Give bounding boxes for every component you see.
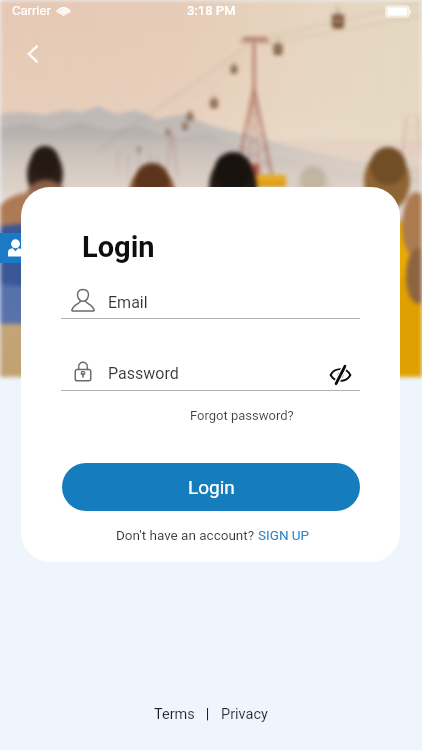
button[interactable]: Forgot password? bbox=[182, 403, 302, 428]
staticText: Login bbox=[188, 476, 235, 498]
button[interactable]: Show password bbox=[326, 364, 355, 386]
staticText: Login bbox=[82, 230, 155, 264]
button[interactable]: Login bbox=[62, 463, 360, 511]
staticText: Carrier bbox=[12, 3, 51, 18]
staticText: Password bbox=[108, 364, 179, 383]
staticText: | bbox=[195, 706, 221, 723]
button[interactable]: SIGN UP bbox=[258, 527, 310, 543]
staticText: Terms bbox=[154, 706, 195, 723]
button[interactable]: Privacy bbox=[221, 706, 268, 723]
staticText: Email bbox=[108, 293, 148, 312]
button[interactable]: Back bbox=[12, 33, 54, 75]
staticText: Forgot password? bbox=[190, 408, 294, 423]
staticText: 3:18 PM bbox=[187, 3, 236, 18]
button[interactable]: Terms bbox=[154, 706, 195, 723]
staticText: SIGN UP bbox=[258, 527, 310, 543]
staticText: Don't have an account? bbox=[116, 527, 258, 543]
staticText: Privacy bbox=[221, 706, 268, 723]
